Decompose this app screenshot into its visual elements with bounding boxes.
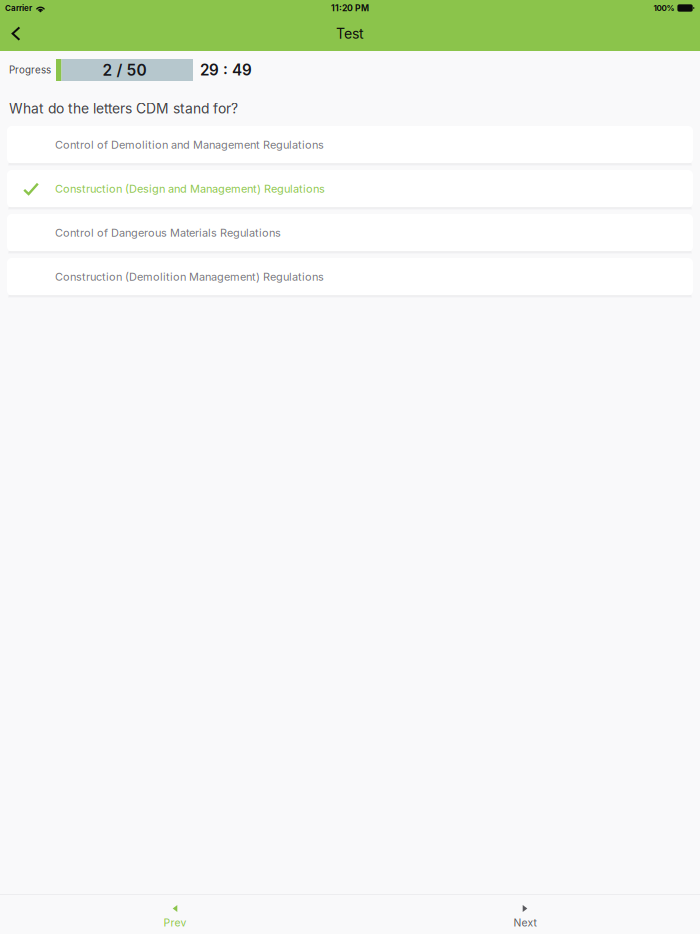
staticText: Construction (Demolition Management) Reg… bbox=[55, 270, 324, 283]
button[interactable]: Back bbox=[0, 16, 42, 51]
button[interactable]: Control of Dangerous Materials Regulatio… bbox=[7, 214, 693, 253]
staticText: Control of Demolition and Management Reg… bbox=[55, 138, 324, 151]
button[interactable]: Control of Demolition and Management Reg… bbox=[7, 126, 693, 165]
staticText: 2 / 50 bbox=[102, 61, 146, 79]
staticText: Progress bbox=[9, 64, 51, 76]
staticText: Prev bbox=[163, 916, 186, 929]
button[interactable]: Construction (Demolition Management) Reg… bbox=[7, 258, 693, 297]
staticText: 11:20 PM bbox=[331, 3, 369, 13]
staticText: What do the letters CDM stand for? bbox=[9, 100, 238, 117]
staticText: 100% bbox=[654, 3, 675, 13]
staticText: Control of Dangerous Materials Regulatio… bbox=[55, 226, 281, 239]
button[interactable]: Next bbox=[350, 895, 700, 934]
staticText: Test bbox=[336, 25, 364, 42]
staticText: Carrier bbox=[5, 3, 32, 13]
staticText: Construction (Design and Management) Reg… bbox=[55, 182, 325, 195]
staticText: 29 : 49 bbox=[200, 61, 252, 79]
button[interactable]: Prev bbox=[0, 895, 350, 934]
button[interactable]: Construction (Design and Management) Reg… bbox=[7, 170, 693, 209]
staticText: Next bbox=[513, 916, 536, 929]
